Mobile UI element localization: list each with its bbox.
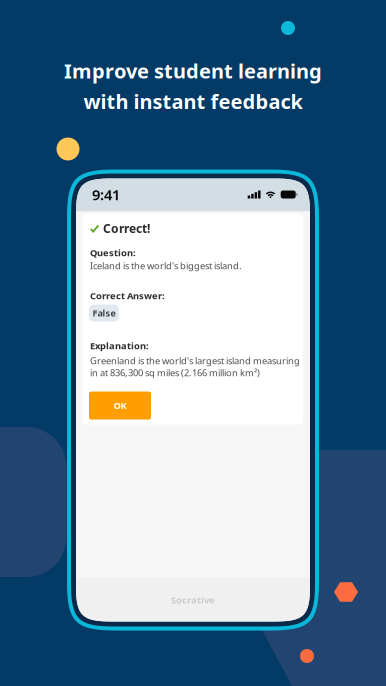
button[interactable]: OK <box>89 391 151 419</box>
staticText: Socrative <box>171 594 215 606</box>
staticText: Improve student learning <box>64 57 322 84</box>
staticText: Correct! <box>103 220 150 236</box>
staticText: Iceland is the world's biggest island. <box>90 259 242 272</box>
staticText: Question: <box>90 246 136 259</box>
staticText: in at 836,300 sq miles (2.166 million km… <box>90 366 260 379</box>
staticText: Explanation: <box>90 339 149 352</box>
staticText: 9:41 <box>92 185 120 204</box>
staticText: with instant feedback <box>83 88 302 115</box>
staticText: Greenland is the world's largest island … <box>90 354 300 367</box>
staticText: Correct Answer: <box>90 289 165 302</box>
staticText: False <box>92 307 115 319</box>
staticText: OK <box>113 399 126 412</box>
